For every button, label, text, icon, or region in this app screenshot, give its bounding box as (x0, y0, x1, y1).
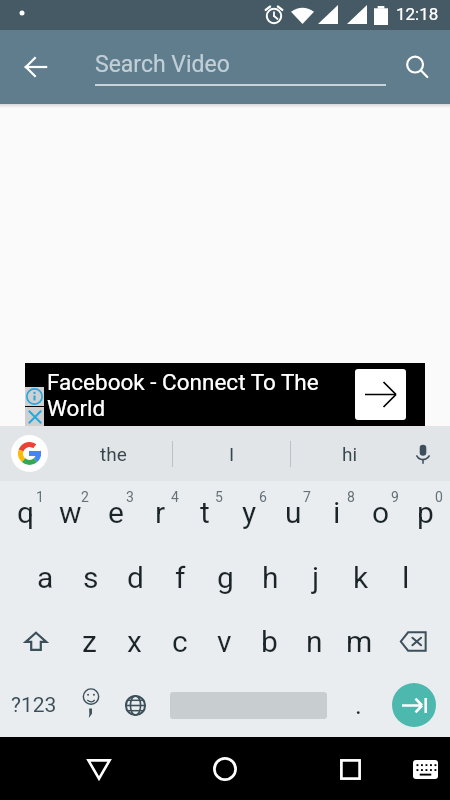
staticText: ?123 (11, 693, 57, 718)
staticText: 0 (435, 489, 443, 505)
staticText: 8 (347, 489, 355, 505)
staticText: p (417, 495, 434, 530)
button[interactable]: 1 (3, 481, 48, 545)
button[interactable]: 3 (93, 481, 138, 545)
button[interactable]: Google (11, 435, 48, 472)
staticText: . (355, 690, 362, 720)
button[interactable]: Home (201, 745, 249, 793)
staticText: j (312, 560, 320, 595)
staticText: x (127, 624, 142, 659)
button[interactable]: Ad information (25, 387, 44, 406)
staticText: w (59, 495, 82, 530)
staticText: f (175, 560, 186, 595)
staticText: s (83, 560, 99, 595)
button[interactable]: m (337, 609, 382, 673)
staticText: hi (342, 443, 358, 465)
staticText: 1 (36, 489, 44, 505)
staticText: 3 (126, 489, 134, 505)
staticText: 12:18 (396, 4, 439, 24)
button[interactable]: Voice input (406, 437, 440, 471)
button[interactable]: s (68, 545, 113, 609)
button[interactable]: ?123 (4, 673, 64, 737)
button[interactable]: d (113, 545, 158, 609)
button[interactable]: x (112, 609, 157, 673)
staticText: i (333, 495, 341, 530)
button[interactable]: b (247, 609, 292, 673)
button[interactable]: c (157, 609, 202, 673)
staticText: 9 (391, 489, 399, 505)
staticText: y (242, 495, 257, 530)
button[interactable]: f (158, 545, 203, 609)
button[interactable]: Back (75, 745, 123, 793)
button[interactable]: 2 (48, 481, 93, 545)
staticText: Search Video (95, 51, 230, 78)
button[interactable]: Change language (113, 673, 158, 737)
button[interactable]: . (338, 673, 378, 737)
staticText: v (217, 624, 232, 659)
button[interactable]: 7 (271, 481, 315, 545)
button[interactable]: l (383, 545, 428, 609)
button[interactable]: Backspace (382, 609, 450, 673)
button[interactable]: z (67, 609, 112, 673)
staticText: h (262, 560, 279, 595)
button[interactable]: Close ad (25, 407, 44, 426)
button[interactable]: Open ad (355, 369, 406, 420)
button[interactable]: 9 (359, 481, 403, 545)
staticText: k (353, 560, 369, 595)
button[interactable]: k (338, 545, 383, 609)
staticText: t (200, 495, 210, 530)
staticText: r (155, 495, 166, 530)
button[interactable]: Shift (0, 609, 67, 673)
button[interactable]: Ad information (25, 363, 425, 426)
staticText: q (17, 495, 35, 530)
staticText: Facebook - Connect To The World (47, 369, 335, 421)
button[interactable]: Keyboard (401, 745, 449, 793)
staticText: 5 (215, 489, 223, 505)
staticText: u (285, 495, 302, 530)
staticText: c (172, 624, 188, 659)
staticText: the (100, 443, 127, 465)
staticText: 6 (259, 489, 267, 505)
button[interactable]: the (55, 426, 172, 481)
button[interactable]: 8 (315, 481, 359, 545)
button[interactable]: j (293, 545, 338, 609)
button[interactable]: g (203, 545, 248, 609)
button[interactable]: 5 (183, 481, 227, 545)
staticText: I (229, 443, 235, 465)
button[interactable]: v (202, 609, 247, 673)
staticText: l (402, 560, 410, 595)
staticText: 4 (171, 489, 179, 505)
button[interactable]: hi (291, 426, 408, 481)
staticText: d (127, 560, 144, 595)
staticText: m (346, 624, 373, 659)
staticText: 2 (81, 489, 89, 505)
button[interactable]: 4 (138, 481, 183, 545)
button[interactable]: h (248, 545, 293, 609)
button[interactable]: Enter (392, 683, 436, 727)
staticText: 7 (303, 489, 311, 505)
staticText: g (217, 560, 234, 595)
button[interactable]: I (173, 426, 290, 481)
button[interactable]: Search (398, 48, 436, 86)
button[interactable]: Recents (326, 745, 374, 793)
staticText: b (261, 624, 278, 659)
staticText: o (372, 495, 390, 530)
button[interactable]: Emoji (68, 673, 113, 737)
button[interactable]: 6 (227, 481, 271, 545)
staticText: z (82, 624, 97, 659)
button[interactable]: a (22, 545, 68, 609)
button[interactable]: n (292, 609, 337, 673)
staticText: a (37, 560, 54, 595)
button[interactable]: 0 (403, 481, 447, 545)
staticText: n (306, 624, 323, 659)
button[interactable]: Back (18, 49, 54, 85)
staticText: e (108, 495, 124, 530)
